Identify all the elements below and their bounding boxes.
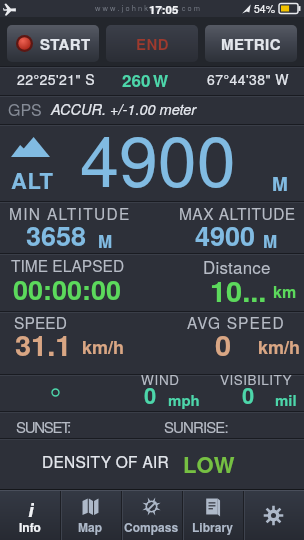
staticText: 4900 bbox=[195, 216, 256, 255]
staticText: M bbox=[263, 229, 278, 253]
staticText: ALT bbox=[11, 164, 54, 196]
button[interactable]: Settings bbox=[243, 491, 304, 540]
staticText: METRIC bbox=[221, 33, 281, 54]
staticText: VISIBILITY bbox=[220, 370, 293, 389]
staticText: SUNRISE: bbox=[164, 416, 228, 437]
staticText: 22°25'21" S bbox=[17, 69, 96, 89]
staticText: 0 bbox=[242, 379, 255, 411]
staticText: 0 bbox=[215, 323, 232, 365]
staticText: mph bbox=[168, 389, 200, 410]
button[interactable]: Compass bbox=[121, 491, 182, 540]
staticText: SPEED bbox=[14, 311, 68, 333]
staticText: km bbox=[273, 280, 297, 303]
staticText: MAX ALTITUDE bbox=[179, 202, 296, 224]
staticText: 0 bbox=[144, 379, 157, 411]
staticText: SUNSET: bbox=[16, 416, 70, 437]
staticText: 31.1 bbox=[15, 323, 72, 365]
staticText: 3658 bbox=[26, 216, 87, 255]
staticText: AVG SPEED bbox=[187, 311, 285, 333]
button[interactable]: END bbox=[106, 25, 198, 62]
staticText: ACCUR. +/-1.00 meter bbox=[51, 99, 197, 119]
staticText: 4900 bbox=[80, 107, 236, 207]
button[interactable]: Map bbox=[60, 491, 121, 540]
staticText: M bbox=[98, 229, 113, 253]
staticText: w w w . j o h n k a r r o s . c o m bbox=[95, 2, 201, 13]
staticText: km/h bbox=[258, 334, 301, 360]
staticText: GPS bbox=[8, 98, 42, 121]
staticText: i bbox=[28, 496, 34, 517]
staticText: LOW bbox=[183, 448, 236, 480]
staticText: Map bbox=[78, 518, 103, 535]
button[interactable]: Library bbox=[182, 491, 243, 540]
staticText: END bbox=[136, 33, 169, 54]
staticText: Library bbox=[192, 518, 234, 535]
staticText: 10... bbox=[210, 269, 267, 311]
staticText: Distance bbox=[203, 254, 271, 278]
staticText: W bbox=[153, 69, 169, 92]
staticText: TIME ELAPSED bbox=[11, 254, 125, 276]
staticText: START bbox=[40, 33, 91, 54]
button[interactable]: i bbox=[0, 491, 60, 540]
staticText: 00:00:00 bbox=[13, 270, 122, 309]
staticText: Compass bbox=[124, 518, 179, 535]
staticText: 17:05 bbox=[149, 1, 179, 17]
staticText: mil bbox=[275, 389, 297, 410]
staticText: DENSITY OF AIR bbox=[42, 450, 169, 472]
staticText: km/h bbox=[82, 334, 125, 360]
staticText: 67°44'38" W bbox=[207, 69, 290, 89]
staticText: 260 bbox=[122, 68, 151, 92]
staticText: MIN ALTITUDE bbox=[9, 202, 131, 224]
staticText: M bbox=[272, 170, 288, 197]
staticText: 54% bbox=[254, 1, 276, 16]
button[interactable]: METRIC bbox=[205, 25, 297, 62]
staticText: WIND bbox=[141, 370, 180, 389]
button[interactable]: START bbox=[7, 25, 99, 62]
staticText: Info bbox=[19, 518, 41, 535]
